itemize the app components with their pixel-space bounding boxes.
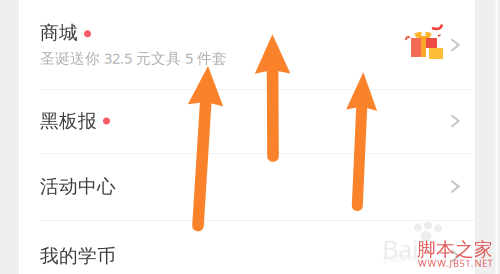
staticText: WWW.JB51.NET [418,257,493,269]
button[interactable]: 活动中心 [0,153,475,220]
button[interactable]: 我的学币 [0,220,475,274]
button[interactable]: 黑板报 [0,89,475,153]
button[interactable]: 商城 [0,0,475,89]
staticText: jiaoben [383,250,421,264]
staticText: 脚本之家 [417,238,493,261]
staticText: Bai [382,232,419,266]
staticText: 商城 [40,21,78,44]
staticText: 黑板报 [40,109,97,132]
staticText: 我的学币 [40,244,116,267]
staticText: 活动中心 [40,175,116,198]
staticText: 圣诞送你 32.5 元文具 5 件套 [40,48,227,68]
